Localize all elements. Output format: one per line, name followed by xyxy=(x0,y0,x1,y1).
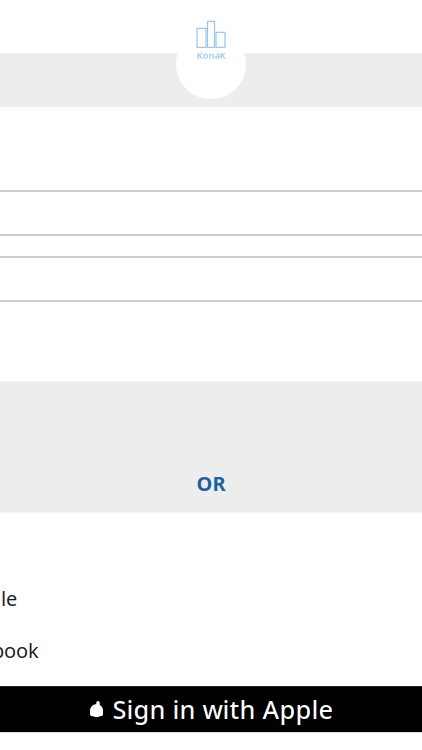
button[interactable]: Connect via Facebook xyxy=(0,628,422,672)
staticText: KonaK xyxy=(196,49,225,61)
button[interactable]: Connect via Google xyxy=(0,576,422,620)
staticText: Connect via Facebook xyxy=(0,637,39,663)
button[interactable]: Sign in with Apple xyxy=(0,686,422,732)
staticText: OR xyxy=(196,470,225,497)
staticText: Sign in with Apple xyxy=(112,692,333,726)
staticText: Connect via Google xyxy=(0,585,17,611)
